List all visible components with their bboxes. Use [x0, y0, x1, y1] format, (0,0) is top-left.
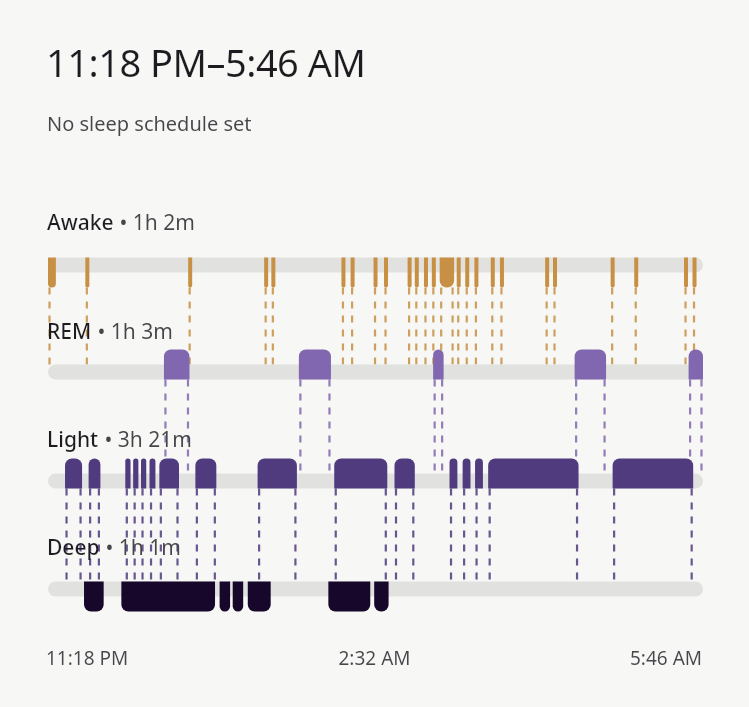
button[interactable]	[0, 0, 749, 707]
